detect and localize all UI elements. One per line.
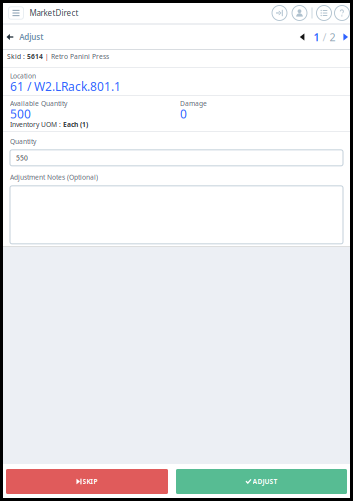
button[interactable]: Help <box>334 5 350 21</box>
staticText: | <box>43 52 51 61</box>
staticText: ADJUST <box>252 477 277 486</box>
button[interactable]: Adjust <box>6 32 47 42</box>
button[interactable]: Previous record <box>300 33 313 41</box>
staticText: Damage <box>180 99 207 108</box>
staticText: Quantity <box>10 137 36 146</box>
staticText: 1 <box>313 30 319 44</box>
staticText: 2 <box>329 30 335 44</box>
button[interactable]: SKIP <box>6 469 168 494</box>
staticText: Inventory UOM : <box>10 120 63 129</box>
staticText: MarketDirect <box>29 8 78 18</box>
staticText: Retro Panini Press <box>51 52 109 61</box>
button[interactable]: Next record <box>335 33 348 41</box>
button[interactable]: Account <box>291 5 307 21</box>
staticText: 500 <box>10 106 31 122</box>
staticText: Skid : <box>7 52 27 61</box>
staticText: SKIP <box>82 477 97 486</box>
staticText: Adjust <box>19 32 43 42</box>
staticText: Available Quantity <box>10 99 67 108</box>
staticText: 5614 <box>27 52 43 61</box>
staticText: Each (1) <box>63 120 88 129</box>
staticText: 0 <box>180 106 187 122</box>
staticText: Location <box>10 71 36 80</box>
staticText: 61 / W2.LRack.801.1 <box>10 78 121 94</box>
button[interactable]: ADJUST <box>176 469 347 494</box>
button[interactable]: Orders <box>316 5 332 21</box>
staticText: / <box>319 30 329 44</box>
button[interactable]: Menu <box>8 7 23 19</box>
button[interactable]: Sign out <box>271 5 287 21</box>
staticText: Adjustment Notes (Optional) <box>10 173 98 182</box>
staticText: 550 <box>16 153 28 162</box>
